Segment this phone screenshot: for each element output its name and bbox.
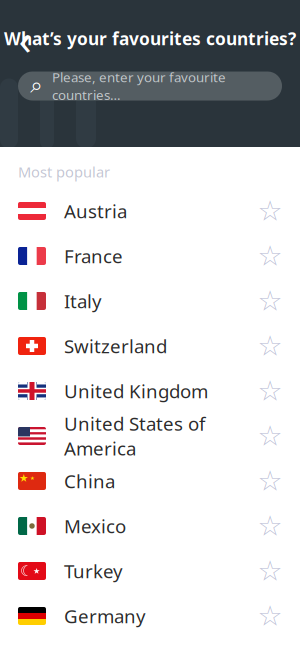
button[interactable]: ★ (0, 458, 300, 503)
staticText: China (64, 469, 115, 493)
button[interactable]: France (0, 233, 300, 278)
staticText: ☆ (257, 195, 282, 227)
button[interactable]: Mexico (0, 503, 300, 548)
staticText: ☆ (257, 555, 282, 587)
button[interactable]: United Kingdom (0, 368, 300, 413)
staticText: ☆ (257, 330, 282, 362)
button[interactable]: ⌕ (18, 71, 282, 100)
button[interactable]: Germany (0, 593, 300, 638)
staticText: Mexico (64, 514, 126, 538)
staticText: ☆ (257, 510, 282, 542)
staticText: Please, enter your favourite countries… (52, 68, 226, 104)
staticText: ☾ (20, 563, 33, 579)
staticText: Turkey (64, 559, 123, 583)
staticText: ☆ (257, 465, 282, 497)
staticText: Switzerland (64, 334, 167, 358)
staticText: ☆ (257, 240, 282, 272)
staticText: ☆ (257, 420, 282, 452)
staticText: ★ (19, 472, 29, 484)
staticText: Germany (64, 604, 146, 628)
staticText: ★ (33, 566, 40, 575)
staticText: France (64, 244, 123, 268)
staticText: ☆ (257, 600, 282, 632)
button[interactable]: Back (6, 19, 44, 57)
button[interactable]: Switzerland (0, 323, 300, 368)
staticText: ⌕ (30, 75, 43, 97)
staticText: United Kingdom (64, 379, 208, 403)
staticText: ★ (30, 475, 35, 481)
staticText: ☆ (257, 375, 282, 407)
button[interactable]: United States of America (0, 413, 300, 458)
staticText: Austria (64, 199, 127, 223)
staticText: United States of America (64, 411, 205, 461)
button[interactable]: ☾ (0, 548, 300, 593)
button[interactable]: Italy (0, 278, 300, 323)
staticText: Most popular (18, 162, 110, 181)
staticText: What’s your favourites countries? (4, 27, 296, 50)
staticText: ‹ (18, 10, 31, 67)
staticText: Italy (64, 289, 102, 313)
staticText: ☆ (257, 285, 282, 317)
button[interactable]: Austria (0, 188, 300, 233)
